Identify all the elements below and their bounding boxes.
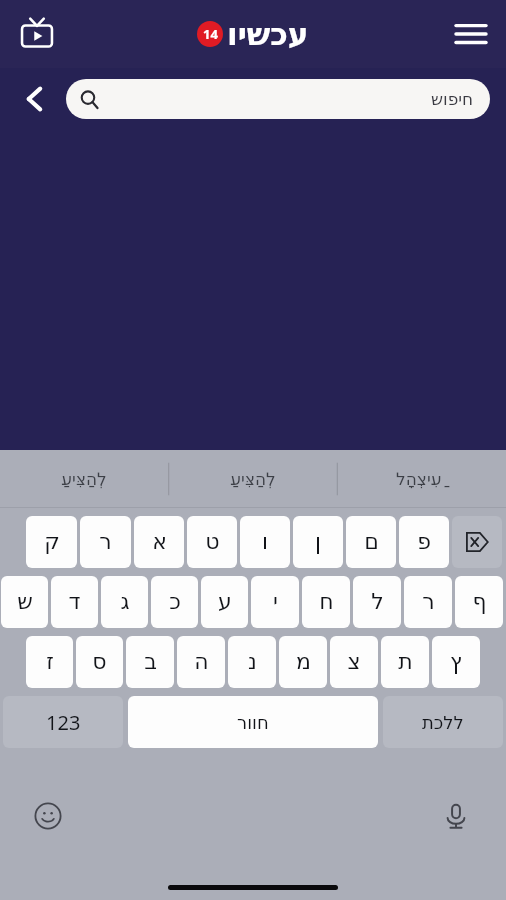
staticText: ללכת (422, 712, 464, 733)
button[interactable]: ה (177, 636, 225, 688)
button[interactable]: נ (228, 636, 276, 688)
button[interactable]: Voice input (436, 796, 476, 836)
button[interactable]: ן (293, 516, 343, 568)
button[interactable]: ד (51, 576, 98, 628)
staticText: ג (120, 589, 130, 615)
button[interactable]: י (251, 576, 299, 628)
staticText: עִיצְהָל ַ (396, 469, 447, 489)
staticText: כ (169, 589, 181, 615)
button[interactable]: כ (151, 576, 198, 628)
button[interactable]: מ (279, 636, 327, 688)
staticText: נ (248, 649, 257, 675)
staticText: חיפוש (431, 89, 474, 109)
staticText: פ (417, 529, 431, 555)
button[interactable]: לְהַצִּיעַ (168, 450, 337, 508)
staticText: י (273, 589, 278, 615)
button[interactable]: חיפוש (66, 79, 490, 119)
staticText: ר (99, 529, 112, 555)
button[interactable]: ו (240, 516, 290, 568)
button[interactable]: ר (80, 516, 131, 568)
button[interactable]: ף (455, 576, 503, 628)
button[interactable]: ס (76, 636, 123, 688)
staticText: ת (398, 649, 413, 675)
staticText: ם (364, 529, 379, 555)
button[interactable]: לְהַצִּיעַ (0, 450, 168, 508)
button[interactable]: Live TV (16, 13, 58, 55)
staticText: ב (144, 649, 157, 675)
button[interactable]: צ (330, 636, 378, 688)
staticText: ז (46, 649, 54, 675)
staticText: ן (315, 529, 321, 555)
button[interactable]: ג (101, 576, 148, 628)
staticText: 14 (203, 25, 218, 43)
staticText: ה (194, 649, 209, 675)
staticText: לְהַצִּיעַ (230, 469, 276, 489)
button[interactable]: Menu (450, 13, 492, 55)
staticText: חוור (237, 712, 269, 733)
staticText: 123 (46, 709, 81, 736)
staticText: עכשיו (227, 16, 309, 52)
staticText: ע (218, 589, 232, 615)
button[interactable]: ללכת (383, 696, 503, 748)
staticText: ף (472, 589, 487, 615)
staticText: ש (17, 589, 33, 615)
button[interactable]: 123 (3, 696, 123, 748)
button[interactable]: ת (381, 636, 429, 688)
staticText: ו (262, 529, 268, 555)
staticText: ח (319, 589, 334, 615)
staticText: ק (44, 529, 60, 555)
staticText: ר (422, 589, 435, 615)
button[interactable]: ח (302, 576, 350, 628)
button[interactable]: ע (201, 576, 248, 628)
button[interactable]: ט (187, 516, 237, 568)
staticText: לְהַצִּיעַ (61, 469, 107, 489)
button[interactable]: פ (399, 516, 449, 568)
button[interactable]: ב (126, 636, 174, 688)
staticText: צ (347, 649, 361, 675)
staticText: מ (296, 649, 311, 675)
button[interactable]: ש (1, 576, 48, 628)
button[interactable]: ז (26, 636, 73, 688)
staticText: ס (92, 649, 107, 675)
button[interactable]: ר (404, 576, 452, 628)
button[interactable]: Backspace (452, 516, 502, 568)
button[interactable]: חוור (128, 696, 378, 748)
button[interactable]: עִיצְהָל ַ (337, 450, 506, 508)
staticText: א (152, 529, 167, 555)
staticText: ץ (450, 649, 462, 675)
button[interactable]: א (134, 516, 184, 568)
button[interactable]: ל (353, 576, 401, 628)
button[interactable]: Emoji (28, 796, 68, 836)
button[interactable]: ק (26, 516, 77, 568)
button[interactable]: ם (346, 516, 396, 568)
staticText: ל (371, 589, 384, 615)
staticText: ט (205, 529, 220, 555)
button[interactable]: Back (10, 74, 60, 124)
staticText: ד (68, 589, 81, 615)
button[interactable]: ץ (432, 636, 480, 688)
